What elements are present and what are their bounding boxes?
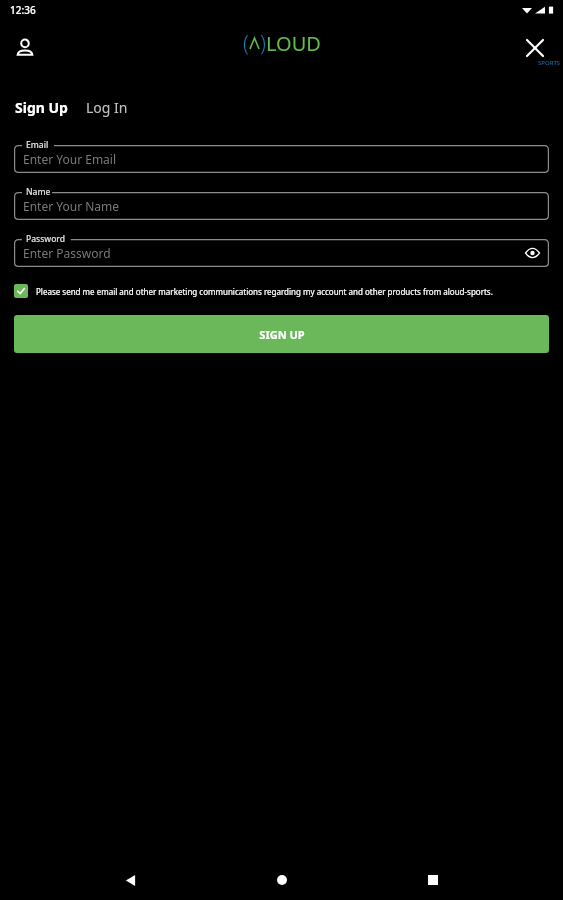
button[interactable]: Sign Up — [15, 95, 68, 120]
button[interactable]: Home — [260, 860, 304, 900]
button[interactable]: Account — [6, 29, 44, 67]
button[interactable]: Back — [108, 860, 152, 900]
staticText: ( — [243, 29, 249, 58]
button[interactable]: Enter Your Name — [14, 192, 549, 220]
staticText: 12:36 — [10, 3, 36, 17]
staticText: Please send me email and other marketing… — [36, 286, 493, 297]
staticText: Password — [26, 233, 66, 245]
button[interactable]: Enter Your Email — [14, 145, 549, 173]
staticText: SPORTS — [538, 59, 561, 67]
button[interactable]: Recents — [411, 860, 455, 900]
button[interactable]: SIGN UP — [14, 315, 549, 353]
button[interactable]: Close — [515, 28, 555, 68]
staticText: Enter Your Name — [23, 198, 120, 214]
staticText: LOUD — [266, 30, 321, 57]
button[interactable]: Please send me email and other marketing… — [14, 284, 549, 298]
button[interactable]: Show password — [521, 242, 543, 264]
staticText: Enter Password — [23, 245, 111, 261]
staticText: Log In — [86, 98, 128, 117]
button[interactable]: Log In — [86, 95, 128, 120]
staticText: Email — [26, 139, 49, 151]
button[interactable]: Enter Password — [14, 239, 549, 267]
staticText: Name — [26, 186, 51, 198]
staticText: Enter Your Email — [23, 151, 117, 167]
staticText: ) — [260, 29, 266, 58]
staticText: SIGN UP — [259, 327, 305, 342]
staticText: Sign Up — [15, 98, 68, 117]
